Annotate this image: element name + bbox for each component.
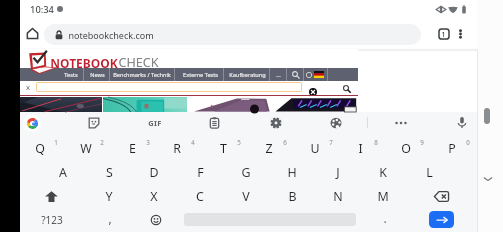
staticText: 6 (283, 138, 287, 146)
button[interactable]: Externe Tests (176, 68, 224, 81)
button[interactable]: Kaufberatung (224, 68, 270, 81)
staticText: 1 (441, 29, 446, 39)
staticText: 7 (329, 138, 333, 146)
staticText: Externe Tests (183, 71, 218, 79)
staticText: 0 (466, 138, 470, 146)
button[interactable]: ... (269, 68, 287, 81)
button[interactable]: B (272, 184, 318, 208)
button[interactable]: , (86, 208, 131, 232)
button[interactable]: ?123 (29, 208, 74, 232)
staticText: T (220, 140, 227, 157)
staticText: Tests (64, 71, 78, 79)
button[interactable]: Enter (429, 211, 454, 228)
button[interactable]: E (112, 136, 158, 160)
button[interactable]: L (409, 160, 455, 184)
staticText: O (401, 140, 411, 157)
staticText: S (106, 164, 113, 181)
button[interactable]: X (134, 184, 180, 208)
button[interactable]: T (203, 136, 249, 160)
staticText: P (448, 140, 456, 157)
button[interactable]: Emoji (133, 208, 178, 232)
button[interactable]: Themes (324, 112, 347, 133)
staticText: V (242, 188, 250, 205)
staticText: . (383, 210, 387, 226)
staticText: CHECK (118, 54, 159, 71)
button[interactable]: Voice input (450, 112, 473, 133)
staticText: F (197, 164, 204, 181)
button[interactable]: M (363, 184, 409, 208)
staticText: J (336, 164, 340, 181)
staticText: Q (35, 140, 45, 157)
staticText: E (129, 140, 136, 157)
button[interactable]: K (363, 160, 409, 184)
button[interactable]: Benchmarks / Technik (109, 68, 175, 81)
staticText: I (358, 140, 363, 157)
button[interactable]: News (85, 68, 110, 81)
button[interactable] (273, 97, 357, 112)
button[interactable]: P (432, 136, 478, 160)
staticText: U (310, 140, 320, 157)
button[interactable] (36, 82, 302, 92)
staticText: A (59, 164, 67, 181)
button[interactable]: N (318, 184, 364, 208)
staticText: H (287, 164, 297, 181)
staticText: 10:34 (30, 3, 54, 16)
staticText: ?123 (41, 213, 63, 227)
button[interactable]: C (180, 184, 226, 208)
staticText: 8 (374, 138, 378, 146)
button[interactable] (20, 97, 102, 112)
staticText: D (149, 164, 159, 181)
button[interactable]: O (386, 136, 432, 160)
staticText: 1 (54, 138, 58, 146)
staticText: GIF (148, 118, 162, 128)
staticText: 5 (237, 138, 241, 146)
button[interactable]: Search (287, 68, 304, 81)
button[interactable]: Home (21, 22, 42, 44)
button[interactable]: U (295, 136, 341, 160)
button[interactable]: Hide keyboard (479, 170, 497, 188)
button[interactable]: Home gesture (484, 108, 490, 124)
staticText: ... (276, 71, 281, 79)
button[interactable]: Tests (58, 68, 84, 81)
button[interactable]: Q (20, 136, 66, 160)
button[interactable]: Settings (264, 112, 287, 133)
button[interactable]: notebookcheck.com (44, 24, 421, 45)
button[interactable]: F (180, 160, 226, 184)
button[interactable] (103, 97, 187, 112)
button[interactable]: V (226, 184, 272, 208)
staticText: B (288, 188, 297, 205)
button[interactable]: Z (249, 136, 295, 160)
button[interactable]: H (272, 160, 318, 184)
button[interactable]: Tabs (433, 23, 454, 45)
button[interactable]: GIF (143, 112, 166, 133)
button[interactable]: Clipboard (203, 112, 226, 133)
button[interactable]: I (340, 136, 386, 160)
button[interactable]: Google (23, 114, 41, 132)
staticText: L (426, 164, 433, 181)
staticText: R (173, 140, 181, 157)
button[interactable]: Shift (20, 184, 89, 208)
button[interactable]: More (389, 112, 412, 133)
button[interactable]: D (134, 160, 180, 184)
staticText: x (26, 82, 30, 92)
button[interactable]: Backspace (409, 184, 478, 208)
button[interactable]: Language (304, 68, 328, 81)
button[interactable]: R (157, 136, 203, 160)
button[interactable]: G (226, 160, 272, 184)
staticText: notebookcheck.com (68, 29, 154, 41)
button[interactable]: Stickers (82, 112, 105, 133)
staticText: G (241, 164, 251, 181)
button[interactable]: Y (89, 184, 135, 208)
button[interactable]: Clear (309, 88, 317, 96)
staticText: Z (265, 140, 273, 157)
button[interactable]: . (362, 208, 407, 232)
button[interactable]: J (318, 160, 364, 184)
button[interactable] (189, 97, 273, 112)
button[interactable]: More options (450, 23, 470, 45)
staticText: News (90, 71, 105, 79)
button[interactable]: A (43, 160, 89, 184)
button[interactable]: S (89, 160, 135, 184)
button[interactable]: W (66, 136, 112, 160)
staticText: , (108, 210, 112, 226)
